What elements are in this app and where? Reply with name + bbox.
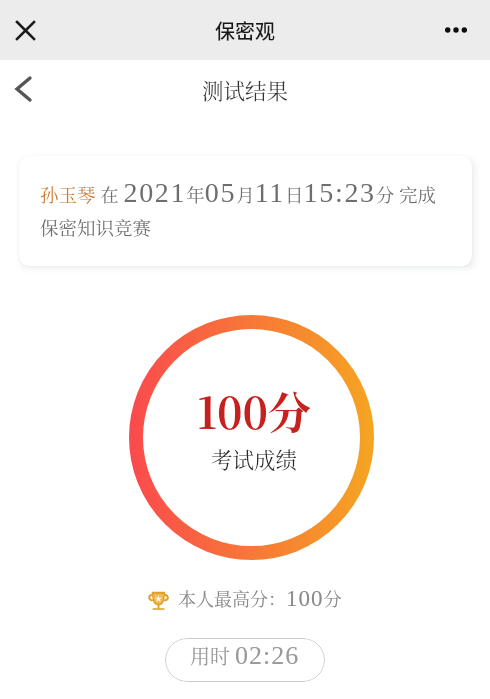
staticText: 100分 <box>197 380 312 442</box>
button[interactable]: Back <box>3 69 43 109</box>
button[interactable]: More options <box>434 8 478 52</box>
staticText: 孙玉琴 在 2021年05月11日15:23分 完成 <box>40 177 437 208</box>
button[interactable]: Close <box>7 12 43 48</box>
button[interactable]: 用时 02:26 <box>165 638 325 682</box>
staticText: 用时 02:26 <box>190 641 300 670</box>
staticText: 保密知识竞赛 <box>40 214 152 241</box>
staticText: 测试结果 <box>202 74 289 105</box>
staticText: 保密观 <box>215 16 275 45</box>
staticText: 本人最高分：100分 <box>178 585 342 611</box>
staticText: 考试成绩 <box>211 443 298 474</box>
